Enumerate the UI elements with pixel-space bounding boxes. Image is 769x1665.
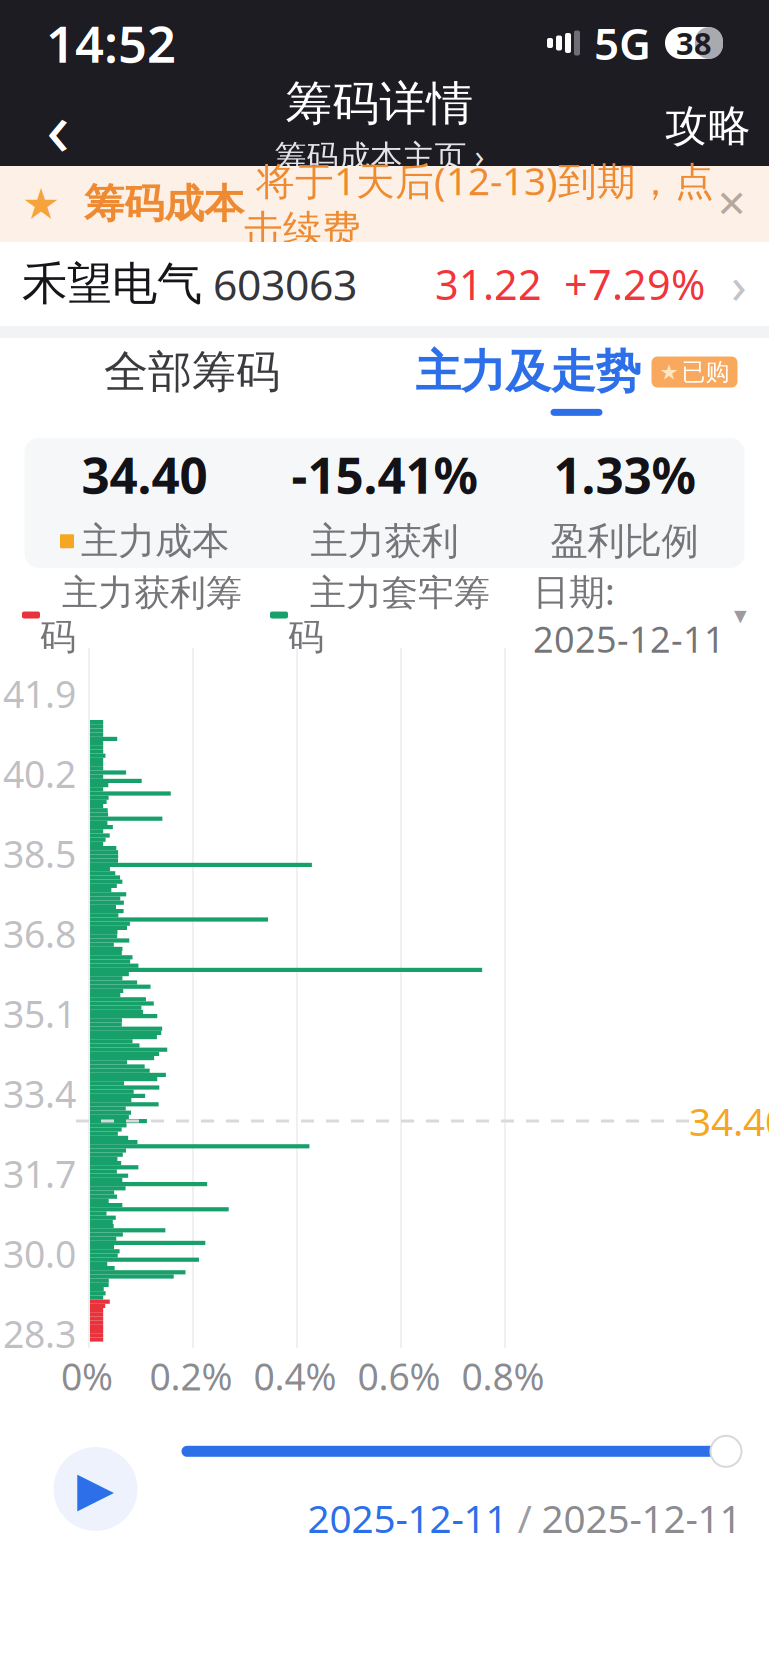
button[interactable]: Play	[53, 1447, 137, 1531]
staticText: ▶	[77, 1462, 114, 1516]
staticText: 主力获利	[310, 518, 458, 564]
staticText: ★	[22, 180, 60, 228]
staticText: 2025-12-11	[307, 1492, 507, 1544]
staticText: 35.1	[3, 989, 76, 1038]
staticText: 2025-12-11	[541, 1492, 741, 1544]
staticText: ›	[705, 250, 747, 318]
staticText: 主力套牢筹码	[288, 571, 490, 659]
staticText: 0%	[61, 1351, 113, 1401]
staticText: 主力获利筹码	[40, 571, 242, 659]
button[interactable]: 筹码成本主页 ›	[274, 134, 484, 177]
staticText: 34.40	[689, 1095, 769, 1147]
button[interactable]: 攻略	[661, 86, 751, 166]
staticText: ‹	[46, 75, 70, 177]
staticText: 攻略	[665, 100, 751, 152]
button[interactable]: 日期:2025-12-11	[533, 567, 747, 663]
staticText: +7.29%	[542, 257, 705, 311]
staticText: 5G	[594, 14, 651, 72]
staticText: /	[507, 1492, 541, 1544]
staticText: 0.6%	[357, 1351, 440, 1401]
staticText: 已购	[681, 357, 729, 387]
staticText: 1.33%	[553, 442, 695, 507]
staticText: 筹码成本主页 ›	[274, 134, 484, 177]
staticText: 30.0	[3, 1229, 76, 1278]
staticText: 盈利比例	[550, 518, 698, 564]
staticText: 禾望电气	[22, 256, 202, 312]
button[interactable]: ★	[0, 166, 769, 242]
staticText: 33.4	[3, 1069, 76, 1118]
staticText: 全部筹码	[104, 345, 280, 399]
staticText: 31.7	[3, 1149, 76, 1198]
button[interactable]: Back	[18, 86, 98, 166]
staticText: 0.8%	[461, 1351, 544, 1401]
staticText: 14:52	[46, 9, 176, 77]
staticText: 38.5	[3, 829, 76, 878]
staticText: 日期:2025-12-11	[533, 567, 725, 663]
staticText: -15.41%	[291, 442, 477, 507]
staticText: 31.22	[435, 257, 542, 311]
staticText: 0.4%	[253, 1351, 336, 1401]
staticText: 34.40	[81, 442, 207, 507]
staticText: 主力成本	[81, 518, 229, 564]
staticText: 603063	[202, 256, 357, 312]
staticText: 将于1天后(12-13)到期，点击续费	[244, 155, 714, 253]
staticText: 36.8	[3, 909, 76, 958]
button[interactable]: 全部筹码	[0, 338, 384, 422]
staticText: ▾	[734, 601, 747, 629]
staticText: 41.9	[3, 669, 76, 718]
staticText: 筹码成本	[60, 179, 244, 228]
staticText: ✕	[716, 183, 747, 225]
staticText: ★	[659, 360, 678, 384]
staticText: 0.2%	[149, 1351, 232, 1401]
staticText: 38	[676, 23, 712, 63]
staticText: 28.3	[3, 1309, 76, 1358]
staticText: 40.2	[3, 749, 76, 798]
button[interactable]: 主力及走势	[384, 338, 769, 422]
button[interactable]: 禾望电气	[0, 242, 769, 326]
staticText: 主力及走势	[415, 344, 640, 400]
staticText: 筹码详情	[285, 75, 473, 132]
